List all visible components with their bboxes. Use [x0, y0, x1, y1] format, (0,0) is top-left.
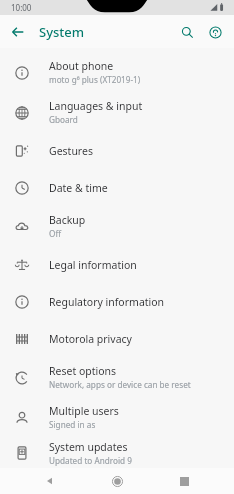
button[interactable]: Back: [5, 19, 31, 45]
staticText: Off: [49, 228, 62, 239]
button[interactable]: Home: [100, 468, 134, 494]
button[interactable]: Multiple users: [0, 397, 234, 437]
staticText: Motorola privacy: [49, 332, 132, 346]
button[interactable]: Reset options: [0, 357, 234, 397]
staticText: System: [39, 23, 85, 41]
staticText: Legal information: [49, 258, 137, 272]
staticText: Gestures: [49, 144, 93, 158]
staticText: 10:00: [11, 2, 32, 13]
staticText: Updated to Android 9: [49, 455, 132, 466]
button[interactable]: Date & time: [0, 169, 234, 206]
staticText: Gboard: [49, 114, 78, 125]
staticText: System updates: [49, 440, 128, 454]
staticText: About phone: [49, 59, 114, 73]
button[interactable]: Back: [33, 468, 67, 494]
staticText: moto g⁶ plus (XT2019-1): [49, 74, 141, 85]
staticText: Languages & input: [49, 99, 143, 113]
staticText: Regulatory information: [49, 295, 165, 309]
button[interactable]: Search: [173, 18, 201, 46]
button[interactable]: Languages & input: [0, 92, 234, 132]
button[interactable]: Gestures: [0, 132, 234, 169]
button[interactable]: Recent apps: [167, 468, 201, 494]
button[interactable]: Regulatory information: [0, 283, 234, 320]
button[interactable]: About phone: [0, 52, 234, 92]
button[interactable]: Legal information: [0, 246, 234, 283]
button[interactable]: System updates: [0, 437, 234, 468]
staticText: Signed in as: [49, 419, 96, 430]
button[interactable]: Backup: [0, 206, 234, 246]
staticText: Reset options: [49, 364, 117, 378]
button[interactable]: Motorola privacy: [0, 320, 234, 357]
staticText: Network, apps or device can be reset: [49, 379, 191, 390]
staticText: Multiple users: [49, 404, 119, 418]
button[interactable]: Help: [201, 18, 229, 46]
staticText: Backup: [49, 213, 86, 227]
staticText: Date & time: [49, 181, 108, 195]
